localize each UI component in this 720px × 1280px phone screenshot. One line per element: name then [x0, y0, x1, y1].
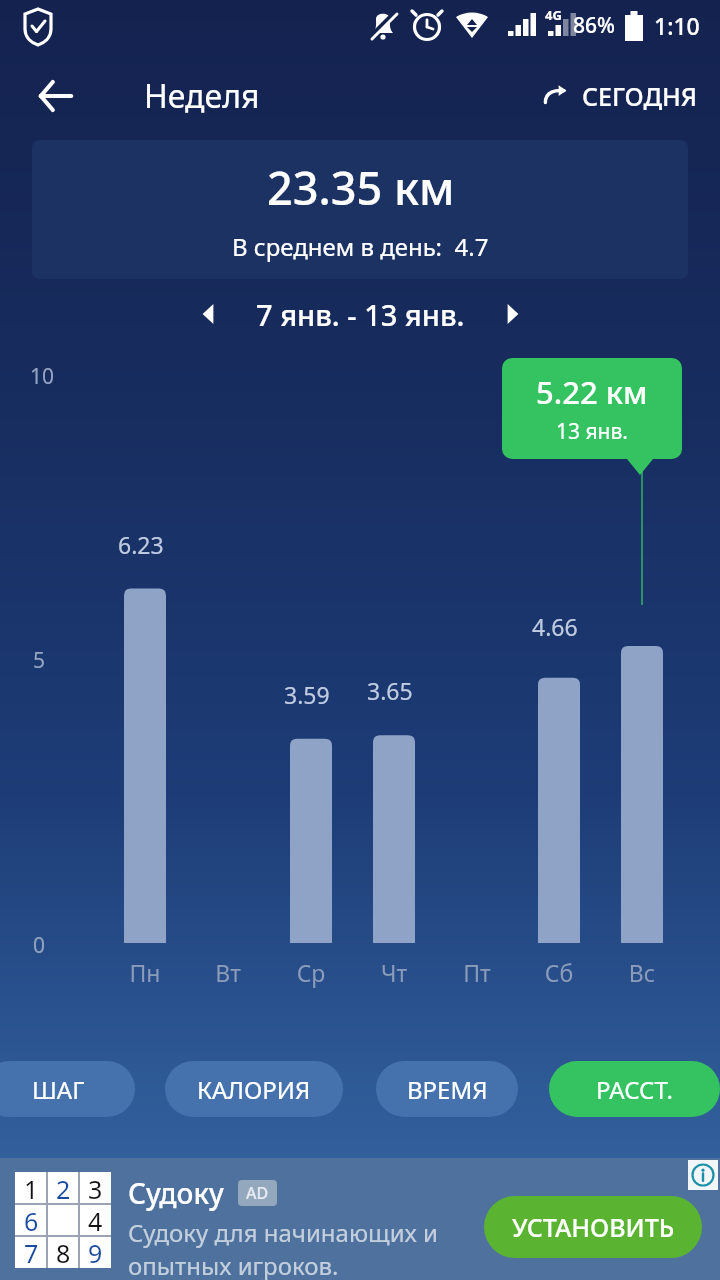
- staticText: Судоку: [128, 1174, 224, 1212]
- staticText: Пн: [124, 957, 166, 988]
- staticText: 4G: [545, 6, 562, 24]
- button[interactable]: Next week: [485, 287, 539, 341]
- staticText: 3.59: [284, 679, 330, 710]
- button[interactable]: Previous week: [182, 287, 236, 341]
- staticText: ВРЕМЯ: [407, 1073, 488, 1106]
- staticText: 6.23: [118, 529, 164, 560]
- staticText: 7: [24, 1236, 39, 1268]
- button[interactable]: Ad info: [688, 1160, 718, 1190]
- button[interactable]: КАЛОРИЯ: [165, 1061, 343, 1117]
- button[interactable]: ВРЕМЯ: [376, 1061, 518, 1117]
- staticText: Сб: [538, 957, 580, 988]
- staticText: опытных игроков.: [128, 1249, 339, 1280]
- staticText: 9: [88, 1236, 103, 1268]
- staticText: 6: [24, 1204, 39, 1236]
- staticText: 7 янв. - 13 янв.: [256, 295, 465, 334]
- button[interactable]: СЕГОДНЯ: [532, 69, 706, 123]
- staticText: Ср: [290, 957, 332, 988]
- staticText: Неделя: [144, 74, 260, 118]
- staticText: УСТАНОВИТЬ: [512, 1210, 675, 1244]
- button[interactable]: 5.22 км: [502, 358, 682, 459]
- staticText: СЕГОДНЯ: [582, 79, 698, 113]
- staticText: 1: [24, 1172, 39, 1204]
- staticText: AD: [246, 1182, 269, 1204]
- staticText: Вс: [621, 957, 663, 988]
- staticText: 4.66: [532, 611, 578, 642]
- staticText: 5: [33, 646, 46, 675]
- staticText: 3.65: [367, 675, 413, 706]
- staticText: 86%: [573, 11, 615, 40]
- staticText: 3: [88, 1172, 103, 1204]
- staticText: Судоку для начинающих и: [128, 1216, 438, 1249]
- button[interactable]: УСТАНОВИТЬ: [484, 1196, 702, 1258]
- staticText: 1:10: [654, 10, 700, 41]
- staticText: 0: [33, 931, 46, 960]
- staticText: ШАГ: [32, 1073, 85, 1106]
- staticText: 13 янв.: [556, 417, 628, 446]
- staticText: 5.22 км: [536, 371, 648, 413]
- staticText: 10: [30, 362, 55, 391]
- staticText: 23.35 км: [267, 157, 455, 218]
- staticText: 2: [56, 1172, 71, 1204]
- staticText: Пт: [456, 957, 498, 988]
- staticText: В среднем в день: 4.7: [232, 230, 489, 263]
- button[interactable]: Back: [22, 62, 90, 130]
- staticText: Вт: [207, 957, 249, 988]
- button[interactable]: 23.35 км: [32, 140, 688, 279]
- staticText: 4: [88, 1204, 103, 1236]
- staticText: РАССТ.: [596, 1073, 673, 1106]
- staticText: КАЛОРИЯ: [197, 1073, 311, 1106]
- staticText: Чт: [373, 957, 415, 988]
- button[interactable]: ШАГ: [0, 1061, 135, 1117]
- button[interactable]: РАССТ.: [549, 1061, 720, 1117]
- staticText: 8: [56, 1236, 71, 1268]
